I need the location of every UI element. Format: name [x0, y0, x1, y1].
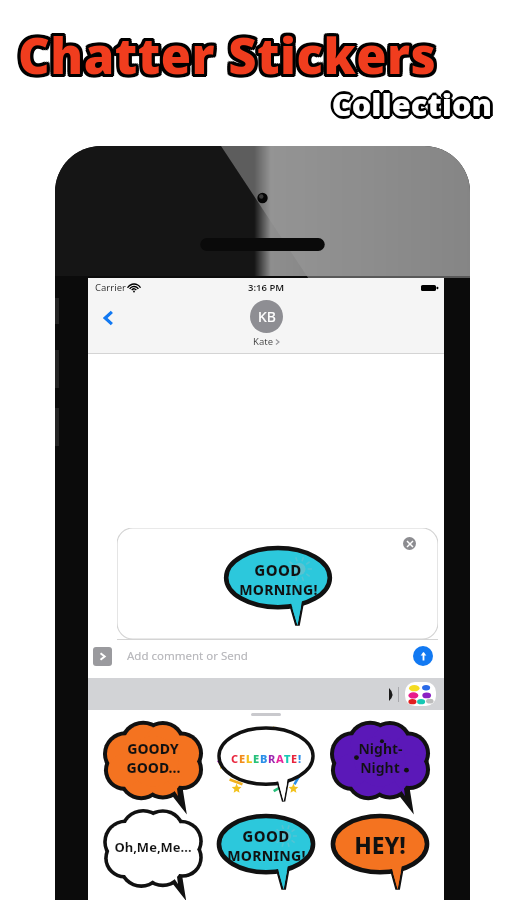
staticText: Chatter Stickers — [18, 19, 437, 86]
staticText: GOOD — [242, 826, 290, 846]
button[interactable]: Sticker — [331, 816, 429, 890]
staticText: Chatter Stickers — [20, 25, 439, 92]
staticText: Add comment or Send — [127, 648, 248, 664]
staticText: Night — [360, 758, 400, 777]
button[interactable]: Back — [94, 303, 124, 333]
staticText: Collection — [332, 84, 493, 125]
staticText: Chatter Stickers — [15, 22, 434, 89]
staticText: Night- — [358, 739, 403, 758]
staticText: Collection — [335, 84, 496, 125]
staticText: Collection — [333, 82, 494, 123]
staticText: Collection — [330, 85, 491, 126]
button[interactable]: Send — [413, 646, 433, 666]
staticText: KB — [258, 307, 276, 326]
staticText: Chatter Stickers — [16, 19, 435, 86]
staticText: Oh,Me,Me... — [104, 838, 202, 856]
button[interactable]: Apps — [93, 647, 112, 666]
staticText: E — [291, 751, 298, 766]
staticText: Chatter Stickers — [21, 24, 440, 91]
staticText: Collection — [334, 85, 495, 126]
staticText: Collection — [332, 81, 493, 122]
button[interactable]: Sticker — [331, 728, 429, 802]
staticText: Collection — [334, 83, 495, 124]
button[interactable]: Sticker — [104, 728, 202, 802]
staticText: HEY! — [331, 829, 429, 860]
staticText: Collection — [333, 86, 494, 127]
staticText: B — [260, 751, 268, 766]
staticText: Chatter Stickers — [21, 22, 440, 89]
staticText: Chatter Stickers — [20, 19, 439, 86]
staticText: E — [239, 751, 246, 766]
staticText: C — [231, 751, 239, 766]
button[interactable]: Sticker — [217, 728, 315, 802]
staticText: Carrier — [95, 281, 126, 294]
staticText: Chatter Stickers — [21, 20, 440, 87]
staticText: Collection — [329, 84, 490, 125]
staticText: GOOD... — [126, 758, 181, 777]
staticText: GOOD — [254, 560, 302, 580]
staticText: Chatter Stickers — [18, 25, 437, 92]
staticText: MORNING! — [227, 846, 306, 865]
staticText: Chatter Stickers — [18, 22, 437, 89]
staticText: Kate — [253, 335, 273, 348]
staticText: Chatter Stickers — [15, 20, 434, 87]
button[interactable]: Add comment or Send — [117, 640, 438, 671]
button[interactable]: Sticker — [217, 816, 315, 890]
button[interactable]: Sticker pack — [405, 682, 436, 706]
staticText: Collection — [332, 87, 493, 128]
staticText: Collection — [331, 82, 492, 123]
staticText: Collection — [331, 86, 492, 127]
staticText: 3:16 PM — [248, 281, 285, 294]
staticText: Chatter Stickers — [15, 24, 434, 91]
staticText: E — [253, 751, 260, 766]
staticText: Collection — [330, 83, 491, 124]
staticText: A — [276, 751, 284, 766]
button[interactable]: Remove sticker — [403, 537, 416, 550]
staticText: MORNING! — [239, 580, 318, 599]
button[interactable]: KB — [250, 300, 283, 348]
staticText: Chatter Stickers — [16, 25, 435, 92]
staticText: GOODY — [127, 739, 179, 758]
staticText: L — [246, 751, 253, 766]
staticText: ! — [298, 751, 302, 766]
staticText: T — [284, 751, 291, 766]
staticText: R — [268, 751, 276, 766]
button[interactable]: Sticker — [104, 816, 202, 890]
